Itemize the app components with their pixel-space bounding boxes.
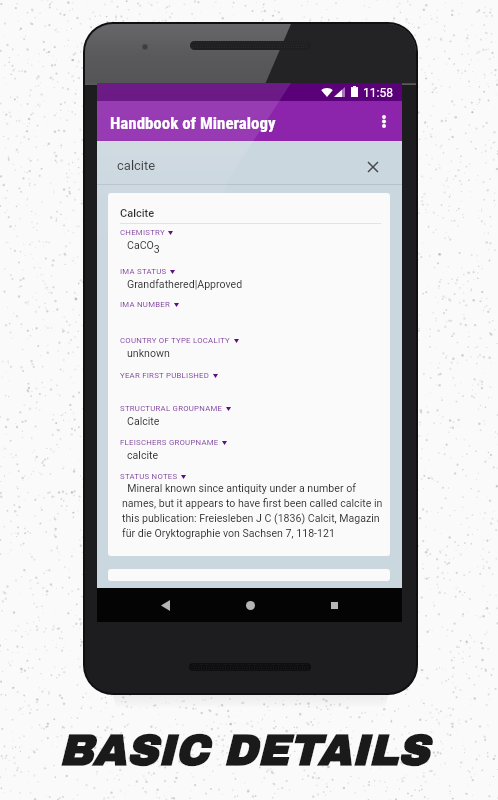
- staticText: YEAR FIRST PUBLISHED: [120, 371, 210, 380]
- staticText: COUNTRY OF TYPE LOCALITY: [120, 336, 231, 345]
- button[interactable]: Home: [233, 588, 267, 622]
- button[interactable]: Recents: [317, 588, 351, 622]
- button[interactable]: Back: [148, 588, 182, 622]
- staticText: 11:58: [363, 86, 393, 100]
- button[interactable]: Clear search: [359, 153, 387, 181]
- staticText: STATUS NOTES: [120, 472, 178, 481]
- staticText: IMA NUMBER: [120, 300, 171, 309]
- staticText: FLEISCHERS GROUPNAME: [120, 438, 219, 447]
- staticText: calcite: [127, 449, 159, 461]
- staticText: Calcite: [127, 415, 160, 427]
- staticText: IMA STATUS: [120, 267, 167, 276]
- staticText: STRUCTURAL GROUPNAME: [120, 404, 223, 413]
- staticText: calcite: [117, 158, 156, 173]
- staticText: CaCO3: [127, 239, 160, 256]
- staticText: unknown: [127, 347, 170, 359]
- staticText: CHEMISTRY: [120, 228, 165, 237]
- staticText: Handbook of Mineralogy: [110, 113, 276, 133]
- button[interactable]: More options: [364, 101, 402, 141]
- staticText: Grandfathered|Approved: [127, 278, 243, 290]
- staticText: Mineral known since antiquity under a nu…: [122, 482, 384, 539]
- button[interactable]: Calcite: [108, 193, 390, 556]
- staticText: BASIC DETAILS: [59, 727, 430, 775]
- staticText: Calcite: [120, 207, 155, 220]
